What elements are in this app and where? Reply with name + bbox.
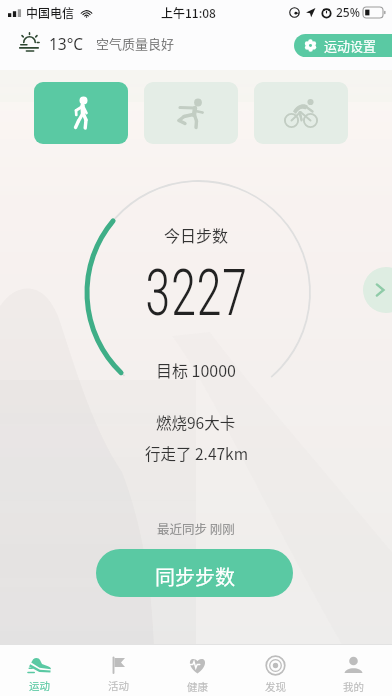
staticText: 中国电信 <box>26 4 75 21</box>
button[interactable]: Cycle mode <box>254 82 348 144</box>
button[interactable]: 同步步数 <box>96 549 293 597</box>
staticText: 行走了 2.47km <box>145 442 248 464</box>
button[interactable]: 活动 <box>79 645 158 696</box>
button[interactable]: Next <box>363 267 392 313</box>
staticText: 我的 <box>343 679 364 694</box>
staticText: 活动 <box>108 678 129 693</box>
staticText: 健康 <box>187 679 208 694</box>
button[interactable]: 运动 <box>0 645 79 696</box>
staticText: 目标 10000 <box>156 358 236 381</box>
staticText: 3227 <box>145 255 248 331</box>
staticText: 今日步数 <box>164 223 229 246</box>
button[interactable]: 发现 <box>236 645 314 696</box>
staticText: 上午11:08 <box>161 4 216 21</box>
staticText: 空气质量良好 <box>96 34 175 53</box>
button[interactable]: 健康 <box>158 645 236 696</box>
button[interactable]: 我的 <box>314 645 392 696</box>
staticText: 燃烧96大卡 <box>156 411 236 433</box>
staticText: 运动设置 <box>324 36 377 55</box>
staticText: 发现 <box>265 679 286 694</box>
staticText: 运动 <box>29 678 50 693</box>
staticText: 13°C <box>49 33 84 54</box>
staticText: 同步步数 <box>155 562 235 591</box>
button[interactable]: 运动设置 <box>294 34 392 57</box>
button[interactable]: Walk mode <box>34 82 128 144</box>
staticText: 最近同步 刚刚 <box>157 519 235 537</box>
button[interactable]: Run mode <box>144 82 238 144</box>
staticText: 25% <box>336 4 360 20</box>
